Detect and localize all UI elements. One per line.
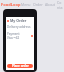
staticText: Delivery address xyxy=(7,25,31,29)
staticText: Visa ••42 xyxy=(7,36,20,40)
staticText: Menu xyxy=(21,2,31,7)
button[interactable]: FoodLoop xyxy=(1,2,21,7)
staticText: About xyxy=(45,2,55,7)
button[interactable]: Payment xyxy=(7,32,33,40)
staticText: My Order xyxy=(10,18,27,23)
staticText: FoodLoop xyxy=(1,2,21,7)
button[interactable]: About xyxy=(45,2,55,7)
staticText: Order xyxy=(33,2,43,7)
button[interactable]: Menu xyxy=(21,2,31,7)
button[interactable]: My Order xyxy=(7,18,33,23)
staticText: Payment xyxy=(7,32,20,36)
staticText: Place order xyxy=(12,64,29,68)
button[interactable]: Contact xyxy=(57,0,63,9)
button[interactable]: Place order xyxy=(7,64,33,68)
button[interactable]: Order xyxy=(33,2,43,7)
staticText: Contact xyxy=(57,0,63,9)
